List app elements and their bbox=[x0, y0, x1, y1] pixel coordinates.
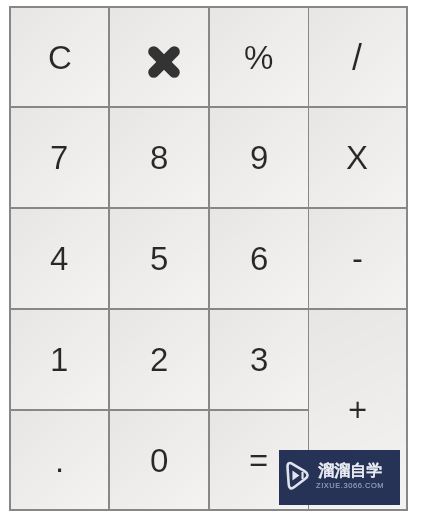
button[interactable]: % bbox=[210, 8, 308, 106]
staticText: C bbox=[48, 39, 72, 76]
staticText: 6 bbox=[250, 240, 269, 277]
staticText: 9 bbox=[250, 139, 269, 176]
staticText: 4 bbox=[50, 240, 69, 277]
staticText: 3 bbox=[250, 341, 269, 378]
button[interactable]: 0 bbox=[110, 411, 208, 509]
staticText: 2 bbox=[150, 341, 169, 378]
button[interactable]: + bbox=[309, 310, 406, 509]
staticText: % bbox=[244, 39, 274, 76]
staticText: 0 bbox=[150, 442, 169, 479]
staticText: 8 bbox=[150, 139, 169, 176]
button[interactable]: - bbox=[309, 209, 406, 308]
staticText: / bbox=[352, 37, 363, 77]
button[interactable]: 5 bbox=[110, 209, 208, 308]
button[interactable]: 6 bbox=[210, 209, 308, 308]
button[interactable]: 9 bbox=[210, 108, 308, 207]
staticText: ZIXUE.3066.COM bbox=[316, 481, 385, 489]
staticText: - bbox=[352, 240, 363, 277]
staticText: + bbox=[348, 391, 368, 428]
button[interactable]: . bbox=[11, 411, 108, 509]
staticText: 5 bbox=[150, 240, 169, 277]
staticText: X bbox=[346, 139, 369, 176]
button[interactable]: 溜溜自学 bbox=[279, 450, 400, 505]
staticText: 溜溜自学 bbox=[318, 461, 382, 481]
button[interactable]: 2 bbox=[110, 310, 208, 409]
button[interactable]: C bbox=[11, 8, 108, 106]
staticText: 1 bbox=[50, 341, 69, 378]
button[interactable]: 1 bbox=[11, 310, 108, 409]
button[interactable]: 4 bbox=[11, 209, 108, 308]
staticText: 7 bbox=[50, 139, 69, 176]
staticText: . bbox=[55, 442, 65, 479]
button[interactable]: 8 bbox=[110, 108, 208, 207]
button[interactable]: 3 bbox=[210, 310, 308, 409]
button[interactable] bbox=[110, 8, 208, 106]
button[interactable]: 7 bbox=[11, 108, 108, 207]
button[interactable]: = bbox=[210, 411, 308, 509]
staticText: = bbox=[249, 442, 269, 479]
button[interactable]: / bbox=[309, 8, 406, 106]
button[interactable]: X bbox=[309, 108, 406, 207]
